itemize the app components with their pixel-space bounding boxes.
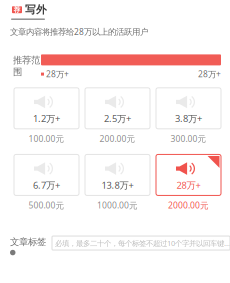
button[interactable]: 必填，最多二十个，每个标签不超过10个字并以回车键分 (52, 236, 230, 250)
staticText: 写外 (25, 3, 47, 16)
button[interactable]: 1.2万+ (14, 88, 79, 144)
staticText: 6.7万+ (33, 179, 60, 191)
button[interactable]: 2.5万+ (85, 88, 150, 144)
staticText: 1.2万+ (33, 112, 60, 125)
button[interactable]: 荐 (0, 0, 102, 16)
staticText: 500.00元 (28, 199, 64, 211)
staticText: 1000.00元 (97, 199, 138, 211)
staticText: 文章内容将推荐给28万以上的活跃用户 (10, 26, 148, 37)
staticText: 2.5万+ (104, 112, 131, 125)
staticText: 28万+ (176, 179, 200, 191)
button[interactable]: 6.7万+ (14, 154, 79, 211)
button[interactable]: 3.8万+ (156, 88, 221, 144)
staticText: 28万+ (46, 68, 69, 80)
staticText: 文章标签 (10, 236, 46, 248)
staticText: 必填，最多二十个，每个标签不超过10个字并以回车键分 (55, 238, 230, 248)
staticText: 推荐范围 (13, 54, 40, 78)
staticText: 100.00元 (28, 133, 64, 144)
staticText: 200.00元 (99, 133, 135, 144)
button[interactable]: 13.8万+ (85, 154, 150, 211)
staticText: 300.00元 (170, 133, 206, 144)
button[interactable]: 28万+ (156, 154, 221, 211)
staticText: 荐 (13, 5, 20, 14)
staticText: 28万+ (198, 68, 221, 80)
staticText: 3.8万+ (175, 112, 202, 125)
staticText: 13.8万+ (101, 179, 133, 191)
staticText: 2000.00元 (168, 199, 209, 211)
